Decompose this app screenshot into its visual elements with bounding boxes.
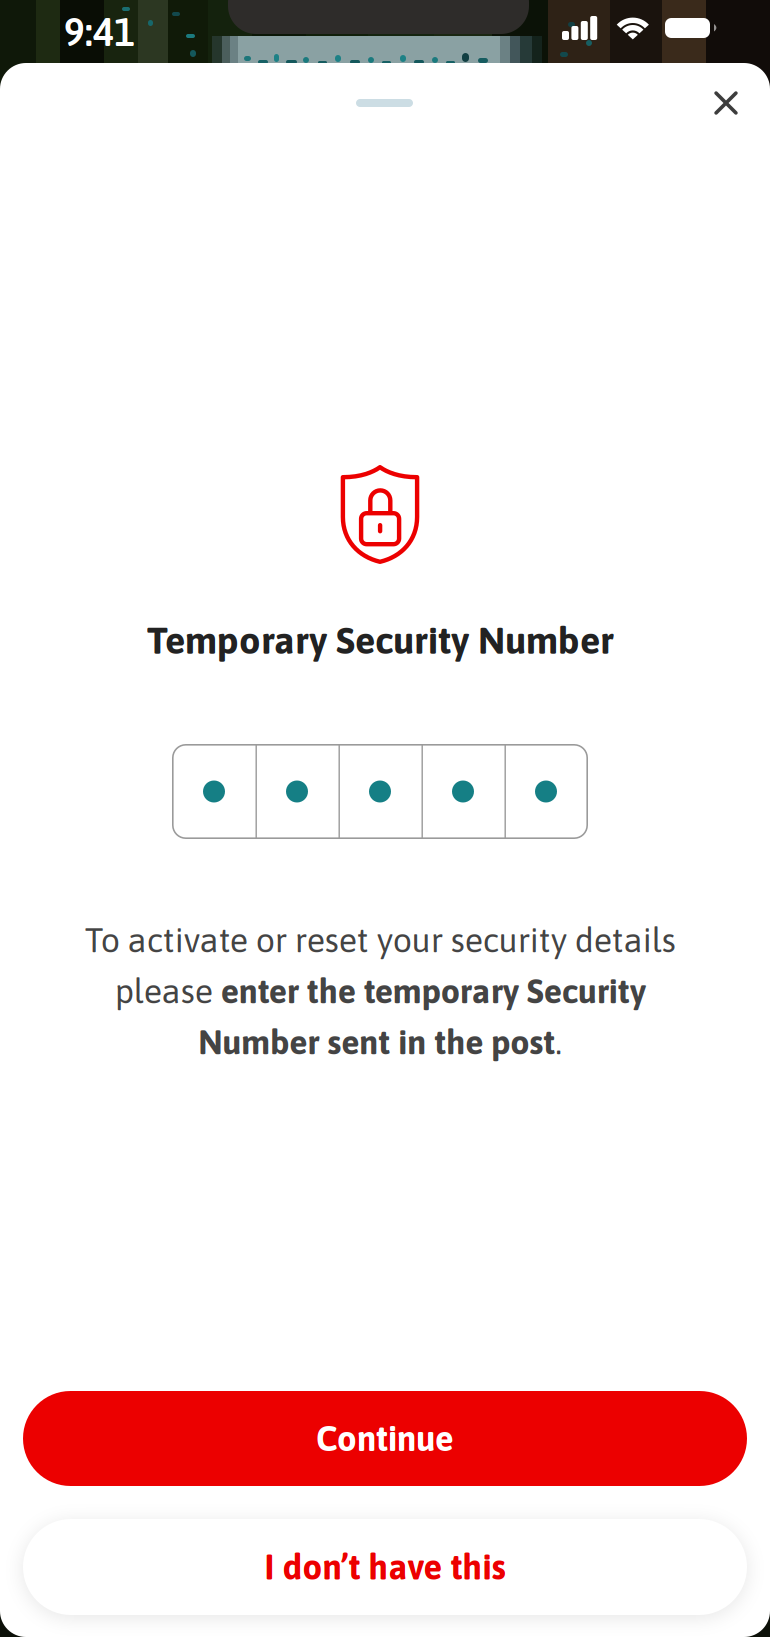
button[interactable]: Continue	[23, 1391, 747, 1486]
staticText: 9:41	[64, 10, 135, 54]
staticText: Temporary Security Number	[147, 618, 614, 662]
staticText: I don’t have this	[264, 1547, 505, 1587]
button[interactable]: I don’t have this	[23, 1519, 747, 1615]
staticText: Continue	[316, 1419, 454, 1458]
button[interactable]: Close	[684, 69, 768, 137]
staticText: To activate or reset your security detai…	[84, 921, 675, 1061]
